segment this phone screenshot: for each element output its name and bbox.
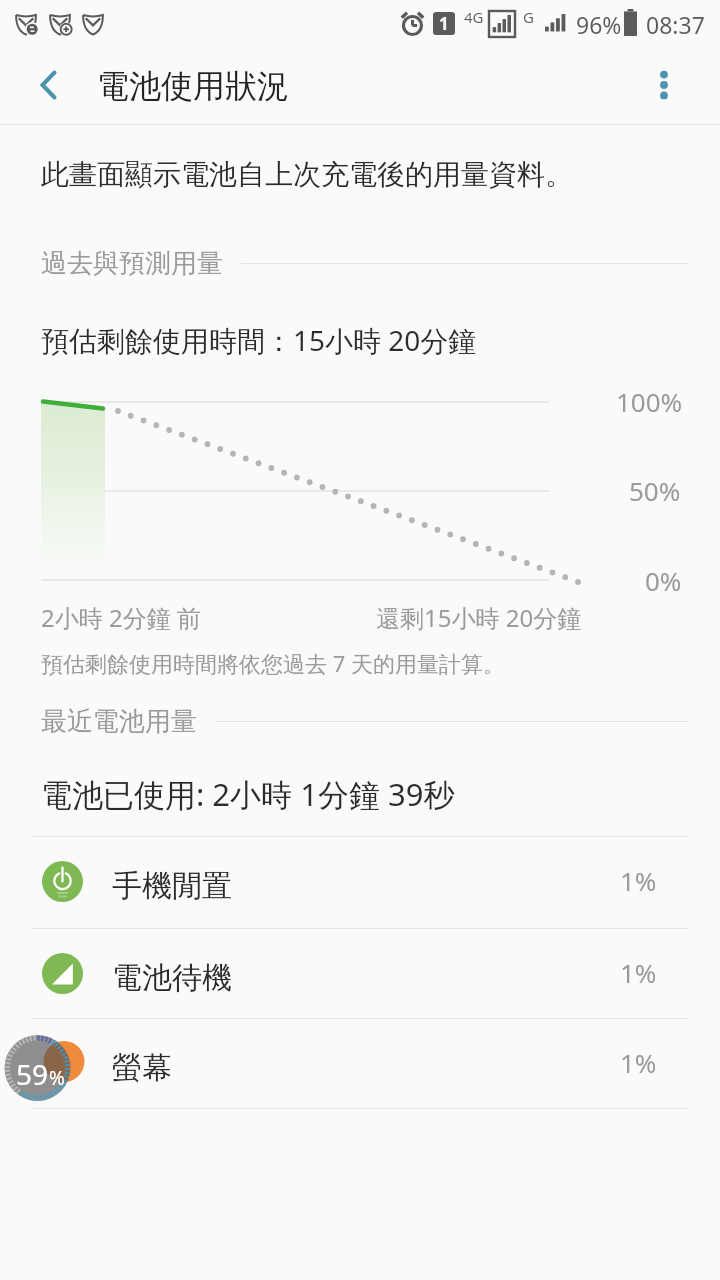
staticText: 預估剩餘使用時間將依您過去 7 天的用量計算。 bbox=[41, 648, 506, 678]
staticText: 最近電池用量 bbox=[41, 705, 197, 738]
button[interactable]: 手機閒置 bbox=[0, 836, 720, 927]
staticText: 還剩15小時 20分鐘 bbox=[376, 601, 582, 634]
staticText: 1% bbox=[620, 863, 657, 898]
button[interactable]: Back bbox=[14, 46, 82, 124]
button[interactable]: More options bbox=[628, 46, 700, 124]
staticText: 4G bbox=[464, 7, 484, 27]
staticText: 100% bbox=[616, 384, 683, 419]
staticText: % bbox=[49, 1065, 65, 1091]
staticText: 1% bbox=[620, 955, 657, 990]
staticText: 電池使用狀況 bbox=[97, 66, 289, 106]
staticText: 電池已使用: 2小時 1分鐘 39秒 bbox=[41, 773, 455, 815]
staticText: 電池待機 bbox=[112, 959, 232, 997]
staticText: 2小時 2分鐘 前 bbox=[41, 601, 201, 634]
button[interactable]: 電池待機 bbox=[0, 928, 720, 1019]
staticText: 過去與預測用量 bbox=[41, 247, 223, 280]
staticText: 08:37 bbox=[646, 9, 705, 40]
staticText: 59 bbox=[16, 1055, 49, 1093]
staticText: 50% bbox=[629, 473, 681, 508]
staticText: 1% bbox=[620, 1045, 657, 1080]
staticText: 預估剩餘使用時間：15小時 20分鐘 bbox=[41, 321, 477, 359]
button[interactable]: 59 bbox=[0, 1018, 720, 1109]
staticText: 手機閒置 bbox=[112, 867, 232, 905]
staticText: 0% bbox=[645, 563, 682, 598]
staticText: G bbox=[523, 7, 534, 27]
staticText: 此畫面顯示電池自上次充電後的用量資料。 bbox=[41, 157, 573, 192]
staticText: 1 bbox=[439, 12, 449, 35]
staticText: 96% bbox=[576, 9, 622, 40]
staticText: 螢幕 bbox=[112, 1049, 172, 1087]
